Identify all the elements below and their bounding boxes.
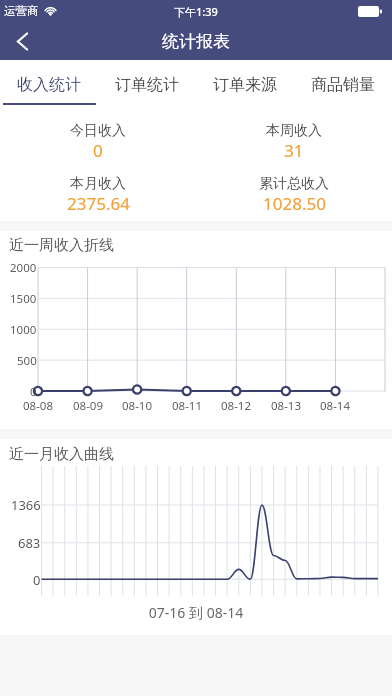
staticText: 500 [17, 353, 37, 369]
staticText: 08-10 [122, 398, 153, 414]
staticText: 0 [30, 384, 37, 400]
staticText: 08-08 [23, 398, 54, 414]
staticText: 08-11 [172, 398, 203, 414]
button[interactable]: 订单来源 [196, 60, 294, 105]
staticText: 今日收入 [70, 122, 126, 140]
staticText: 1366 [11, 496, 41, 514]
button[interactable]: Back [0, 22, 44, 60]
staticText: 商品销量 [311, 75, 375, 95]
button[interactable]: 本月收入 [0, 175, 196, 216]
staticText: 本月收入 [70, 175, 126, 193]
staticText: 31 [284, 139, 304, 162]
button[interactable]: 收入统计 [0, 60, 98, 105]
staticText: 0 [33, 571, 41, 589]
button[interactable]: 商品销量 [294, 60, 392, 105]
staticText: 近一月收入曲线 [9, 445, 114, 464]
button[interactable]: 累计总收入 [196, 175, 392, 216]
staticText: 订单统计 [115, 75, 179, 95]
staticText: 运营商 [4, 4, 39, 18]
button[interactable]: 订单统计 [98, 60, 196, 105]
button[interactable]: 本周收入 [196, 122, 392, 163]
staticText: 08-13 [271, 398, 302, 414]
staticText: 08-12 [221, 398, 252, 414]
staticText: 08-14 [320, 398, 351, 414]
staticText: 本周收入 [266, 122, 322, 140]
staticText: 订单来源 [213, 75, 277, 95]
staticText: 2375.64 [67, 192, 130, 215]
staticText: 1500 [10, 291, 37, 307]
staticText: 0 [93, 139, 103, 162]
staticText: 下午1:39 [174, 4, 218, 19]
staticText: 统计报表 [162, 31, 230, 52]
staticText: 1000 [10, 322, 37, 338]
staticText: 累计总收入 [259, 175, 329, 193]
staticText: 683 [18, 534, 41, 552]
staticText: 1028.50 [263, 192, 326, 215]
staticText: 收入统计 [17, 75, 81, 95]
staticText: 近一周收入折线 [9, 236, 114, 255]
staticText: 2000 [10, 260, 37, 276]
button[interactable]: 今日收入 [0, 122, 196, 163]
staticText: 07-16 到 08-14 [0, 603, 392, 622]
staticText: 08-09 [73, 398, 104, 414]
